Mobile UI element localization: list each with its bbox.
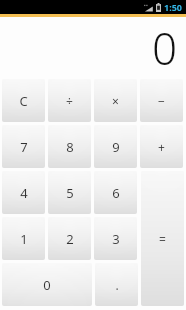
staticText: − [158, 93, 165, 109]
button[interactable]: 1 [2, 217, 45, 260]
staticText: 2 [66, 230, 74, 248]
button[interactable]: . [95, 263, 138, 306]
staticText: 9 [112, 138, 120, 156]
button[interactable]: 6 [94, 171, 137, 214]
button[interactable]: C [2, 79, 45, 122]
staticText: C [19, 92, 28, 110]
staticText: 3 [112, 230, 120, 248]
button[interactable]: 8 [48, 125, 91, 168]
staticText: 1:50 [164, 1, 182, 13]
button[interactable]: 7 [2, 125, 45, 168]
staticText: 0 [152, 18, 178, 78]
staticText: 1 [20, 230, 28, 248]
staticText: 8 [66, 138, 74, 156]
staticText: 5 [66, 184, 74, 202]
button[interactable]: 3 [94, 217, 137, 260]
button[interactable]: Divide [48, 79, 91, 122]
staticText: 7 [20, 138, 28, 156]
staticText: 6 [112, 184, 120, 202]
staticText: . [115, 277, 119, 293]
button[interactable]: 5 [48, 171, 91, 214]
button[interactable]: 0 [2, 263, 92, 306]
button[interactable]: Subtract [140, 79, 183, 122]
button[interactable]: Add [140, 125, 183, 168]
staticText: 0 [43, 276, 51, 294]
staticText: = [159, 231, 166, 247]
staticText: + [158, 139, 165, 155]
staticText: ÷ [66, 93, 73, 109]
button[interactable]: 4 [2, 171, 45, 214]
button[interactable]: 2 [48, 217, 91, 260]
button[interactable]: Multiply [94, 79, 137, 122]
button[interactable]: 9 [94, 125, 137, 168]
staticText: 4 [20, 184, 28, 202]
staticText: × [112, 93, 119, 109]
button[interactable]: Equals [141, 171, 184, 306]
